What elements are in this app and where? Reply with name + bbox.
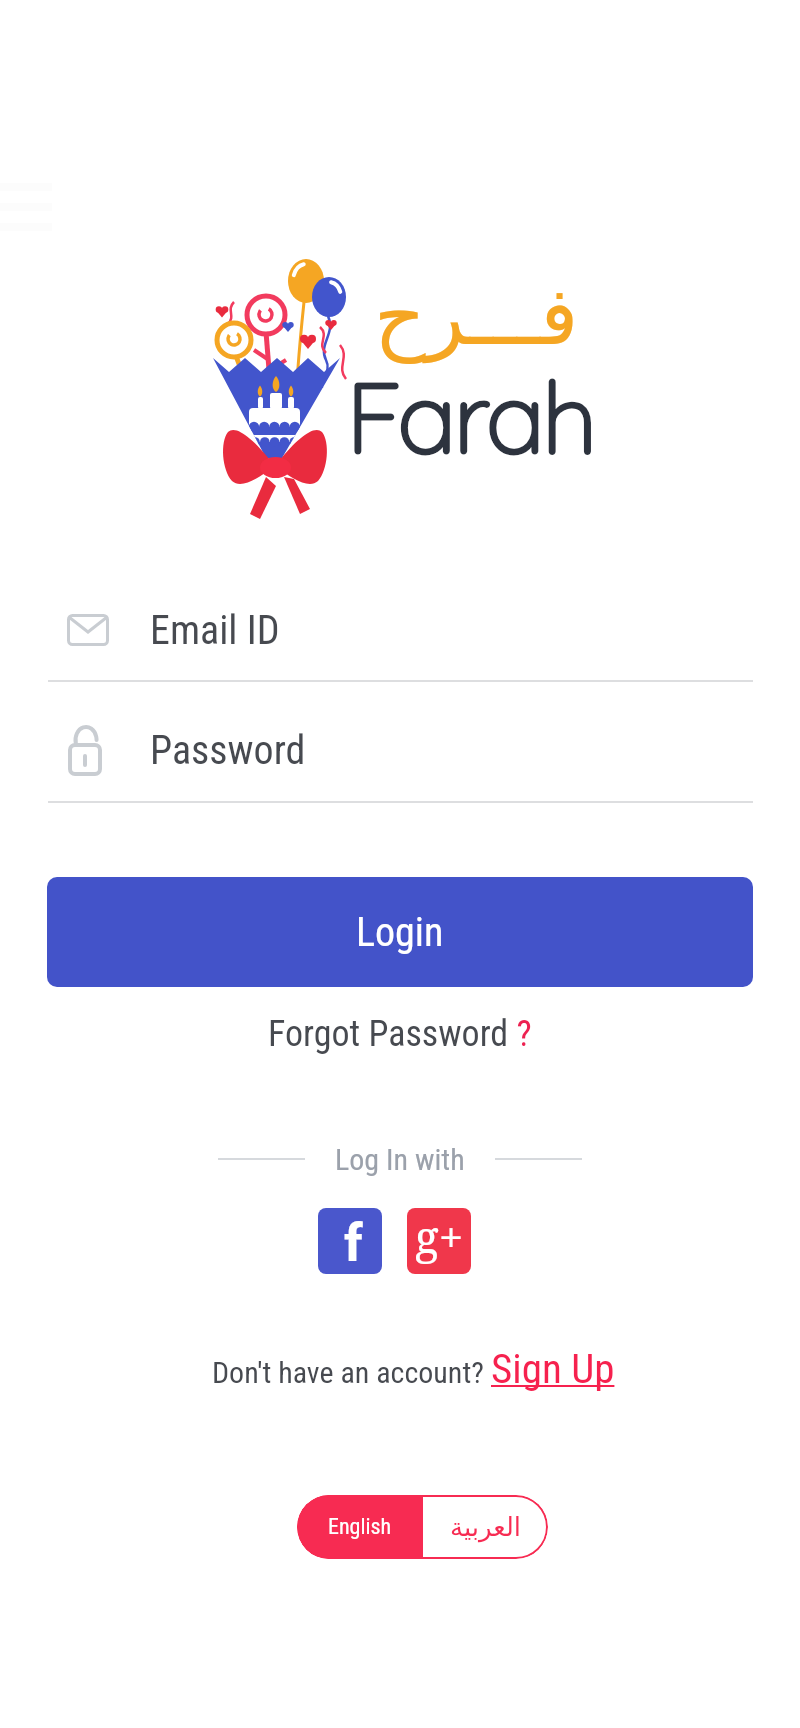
button[interactable]: Login — [47, 877, 753, 987]
staticText: f — [344, 1213, 363, 1274]
staticText: Farah — [346, 354, 595, 478]
staticText: فـــرح — [374, 270, 579, 363]
button[interactable]: Password — [48, 718, 753, 782]
button[interactable]: Email ID — [48, 598, 753, 662]
staticText: Login — [356, 909, 444, 956]
staticText: Log In with — [335, 1142, 465, 1177]
staticText: Sign Up — [491, 1345, 615, 1393]
button[interactable]: g+ — [407, 1208, 471, 1274]
button[interactable]: English — [297, 1495, 423, 1559]
staticText: العربية — [450, 1512, 522, 1542]
button[interactable]: f — [318, 1208, 382, 1274]
staticText: English — [328, 1514, 392, 1540]
button[interactable]: Forgot Password ? — [0, 1006, 800, 1062]
button[interactable]: العربية — [423, 1495, 548, 1559]
button[interactable]: Don't have an account? — [13, 1345, 800, 1407]
staticText: Don't have an account? — [212, 1355, 491, 1390]
staticText: Password — [150, 727, 306, 774]
staticText: g+ — [415, 1208, 464, 1266]
staticText: Forgot Password ? — [268, 1013, 532, 1055]
staticText: Email ID — [150, 607, 280, 654]
